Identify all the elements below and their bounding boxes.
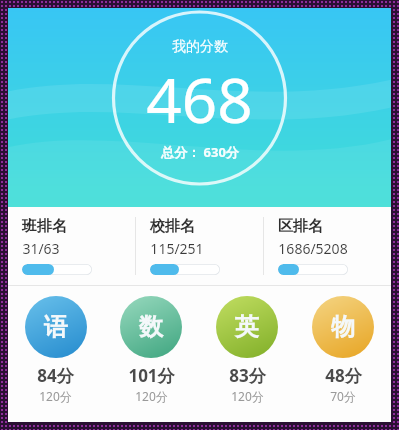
staticText: 数 (139, 312, 163, 342)
staticText: 物 (331, 312, 355, 342)
button[interactable]: 英 (199, 296, 295, 404)
button[interactable]: 班排名 (8, 207, 135, 285)
staticText: 468 (146, 57, 253, 141)
button[interactable]: 数 (103, 296, 199, 404)
staticText: 校排名 (150, 217, 195, 236)
staticText: 48分 (325, 364, 362, 387)
staticText: 英 (235, 312, 259, 342)
staticText: 101分 (128, 364, 175, 387)
staticText: 语 (44, 312, 68, 342)
staticText: 70分 (330, 388, 356, 404)
staticText: 区排名 (278, 217, 323, 236)
staticText: 班排名 (22, 217, 67, 236)
staticText: 120分 (135, 388, 168, 404)
staticText: 31/63 (22, 239, 60, 258)
button[interactable]: 语 (8, 296, 103, 404)
staticText: 120分 (39, 388, 72, 404)
staticText: 总分： 630分 (161, 143, 239, 161)
button[interactable]: 区排名 (264, 207, 391, 285)
staticText: 1686/5208 (278, 239, 348, 258)
staticText: 我的分数 (172, 38, 228, 56)
staticText: 120分 (231, 388, 264, 404)
staticText: 84分 (37, 364, 74, 387)
staticText: 83分 (229, 364, 266, 387)
button[interactable]: 校排名 (136, 207, 263, 285)
button[interactable]: 物 (295, 296, 391, 404)
staticText: 115/251 (150, 239, 204, 258)
